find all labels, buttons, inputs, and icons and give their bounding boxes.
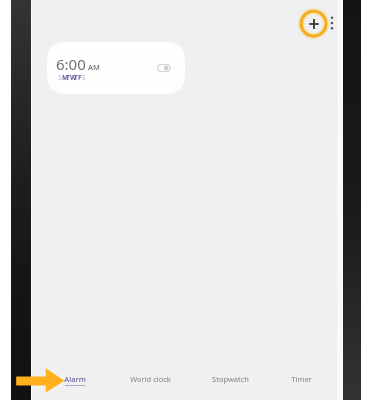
button[interactable]: Alarm — [41, 370, 109, 398]
staticText: World clock — [130, 374, 171, 384]
staticText: M — [62, 73, 66, 82]
button[interactable]: Add alarm — [298, 8, 330, 40]
staticText: T — [66, 73, 70, 82]
staticText: 6:00 — [56, 54, 86, 74]
staticText: T — [74, 73, 78, 82]
button[interactable]: Toggle alarm — [157, 64, 171, 72]
staticText: Timer — [291, 374, 312, 384]
button[interactable]: More options — [323, 9, 341, 37]
staticText: Stopwatch — [212, 374, 249, 384]
staticText: AM — [88, 62, 100, 72]
button[interactable]: 6:00 — [47, 42, 185, 94]
button[interactable]: Timer — [267, 370, 335, 398]
button[interactable]: Stopwatch — [196, 370, 264, 398]
staticText: W — [70, 73, 74, 82]
staticText: F — [78, 73, 82, 82]
button[interactable]: World clock — [116, 370, 184, 398]
staticText: S — [58, 73, 62, 82]
staticText: Alarm — [64, 374, 86, 384]
staticText: S — [82, 73, 86, 82]
